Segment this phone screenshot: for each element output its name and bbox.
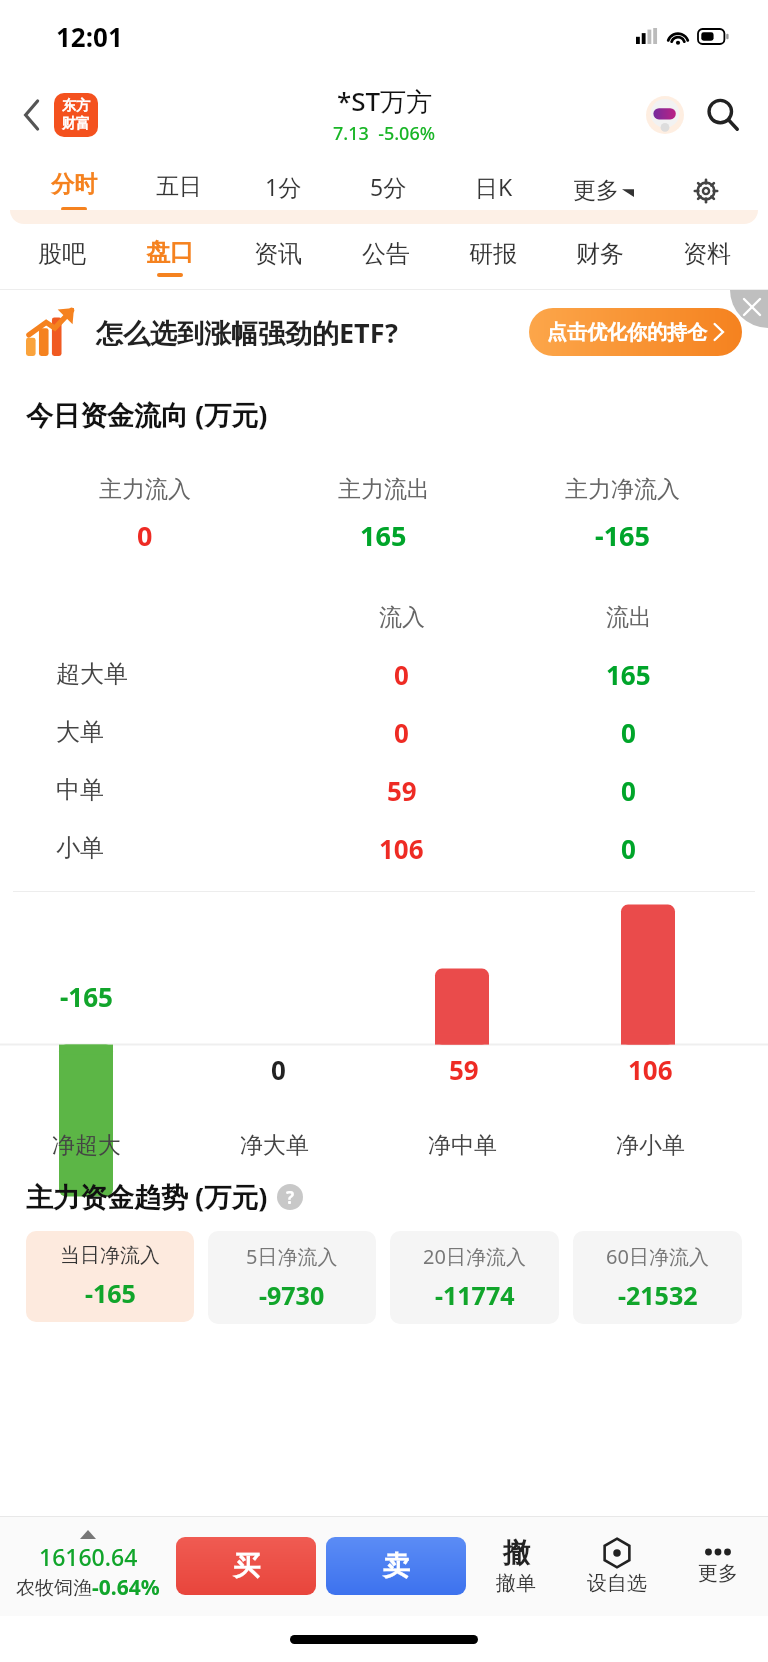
staticText: 流出 [606, 603, 652, 632]
staticText: 59 [449, 1052, 479, 1087]
staticText: 流入 [379, 603, 425, 632]
staticText: 中单 [56, 775, 104, 805]
button[interactable]: Help [277, 1184, 303, 1210]
staticText: 16160.64 [39, 1541, 138, 1572]
staticText: 0 [137, 517, 153, 554]
button[interactable]: 5分 [336, 157, 441, 224]
button[interactable]: 买 [176, 1537, 316, 1595]
button[interactable]: 五日 [126, 157, 231, 224]
staticText: 撤单 [496, 1571, 536, 1596]
staticText: 撤 [503, 1536, 530, 1570]
staticText: 公告 [362, 239, 410, 269]
button[interactable]: 更多 [546, 157, 661, 224]
staticText: 0 [394, 657, 409, 692]
button[interactable]: 公告 [332, 224, 439, 290]
staticText: 分时 [51, 170, 97, 199]
staticText: 净大单 [240, 1131, 309, 1160]
staticText: -9730 [259, 1278, 325, 1312]
staticText: 股吧 [38, 239, 86, 269]
button[interactable]: East Money home [54, 93, 98, 137]
button[interactable]: 卖 [326, 1537, 466, 1595]
staticText: 净中单 [428, 1131, 497, 1160]
button[interactable]: 5日净流入 [208, 1231, 376, 1324]
staticText: 20日净流入 [423, 1243, 526, 1270]
staticText: 资讯 [254, 239, 302, 269]
staticText: 小单 [56, 833, 104, 863]
staticText: 0 [621, 773, 636, 808]
button[interactable]: 股吧 [8, 224, 116, 290]
button[interactable]: 主力流入 [26, 449, 742, 579]
staticText: 超大单 [56, 659, 128, 689]
staticText: 财务 [576, 239, 624, 269]
staticText: 5日净流入 [246, 1243, 338, 1270]
staticText: 更多 [573, 176, 619, 205]
button[interactable]: Search [698, 90, 748, 140]
button[interactable]: 1分 [231, 157, 336, 224]
button[interactable]: Close ad [730, 290, 768, 328]
staticText: 5分 [370, 171, 407, 202]
button[interactable]: 20日净流入 [390, 1231, 559, 1324]
staticText: 买 [233, 1549, 260, 1583]
staticText: 主力净流入 [565, 475, 680, 504]
button[interactable]: 日K [441, 157, 546, 224]
button[interactable]: 16160.64 [0, 1516, 176, 1616]
staticText: 59 [387, 773, 417, 808]
button[interactable]: 小单 [26, 819, 742, 877]
button[interactable]: 大单 [26, 703, 742, 761]
staticText: 主力流出 [338, 475, 430, 504]
staticText: 今日资金流向 (万元) [26, 396, 268, 433]
staticText: 东方 [62, 97, 90, 115]
button[interactable]: 资讯 [224, 224, 332, 290]
staticText: 设自选 [587, 1571, 647, 1596]
staticText: 主力流入 [99, 475, 191, 504]
button[interactable]: 设自选 [566, 1516, 667, 1616]
button[interactable]: 60日净流入 [573, 1231, 742, 1324]
button[interactable]: Back [12, 95, 52, 135]
button[interactable]: AI assistant [640, 90, 690, 140]
staticText: 怎么选到涨幅强劲的ETF? [96, 314, 398, 351]
staticText: -165 [85, 1276, 136, 1310]
staticText: 0 [621, 831, 636, 866]
button[interactable]: 研报 [439, 224, 546, 290]
staticText: 0 [271, 1052, 286, 1087]
staticText: 农牧饲渔 [16, 1576, 92, 1600]
staticText: 165 [606, 657, 651, 692]
staticText: -21532 [618, 1278, 698, 1312]
staticText: 点击优化你的持仓 [547, 320, 707, 345]
staticText: 0 [394, 715, 409, 750]
staticText: 165 [360, 517, 407, 554]
staticText: 大单 [56, 717, 104, 747]
button[interactable]: 财务 [546, 224, 653, 290]
staticText: 卖 [383, 1549, 410, 1583]
staticText: -165 [595, 517, 650, 554]
staticText: 研报 [469, 239, 517, 269]
staticText: *ST万方 [337, 83, 433, 119]
button[interactable]: 超大单 [26, 645, 742, 703]
button[interactable]: 当日净流入 [26, 1231, 194, 1322]
staticText: ? [286, 1186, 295, 1209]
staticText: 更多 [698, 1561, 738, 1586]
staticText: 资料 [683, 239, 731, 269]
staticText: 当日净流入 [60, 1243, 160, 1268]
button[interactable]: 盘口 [116, 224, 224, 290]
button[interactable]: 分时 [22, 157, 126, 224]
button[interactable]: 资料 [653, 224, 760, 290]
staticText: 净小单 [616, 1131, 685, 1160]
staticText: 7.13 -5.06% [333, 121, 436, 146]
button[interactable]: 怎么选到涨幅强劲的ETF? [0, 290, 768, 374]
staticText: 盘口 [146, 237, 194, 267]
button[interactable]: 更多 [667, 1516, 768, 1616]
staticText: 五日 [156, 172, 202, 201]
staticText: 12:01 [56, 19, 123, 54]
staticText: -11774 [435, 1278, 515, 1312]
staticText: -0.64% [92, 1573, 160, 1602]
staticText: -165 [60, 979, 113, 1014]
staticText: 财富 [62, 115, 90, 133]
button[interactable]: 点击优化你的持仓 [529, 308, 742, 356]
staticText: 主力资金趋势 (万元) [26, 1178, 268, 1215]
button[interactable]: 撤 [466, 1516, 566, 1616]
staticText: 60日净流入 [606, 1243, 709, 1270]
button[interactable]: Chart settings [661, 157, 750, 224]
staticText: 0 [621, 715, 636, 750]
button[interactable]: 中单 [26, 761, 742, 819]
